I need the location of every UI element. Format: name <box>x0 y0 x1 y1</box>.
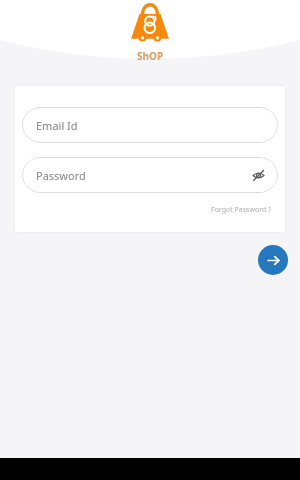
staticText: Password <box>36 168 86 183</box>
staticText: Forgot Password ? <box>211 205 272 215</box>
button[interactable]: Email Id <box>22 107 278 143</box>
staticText: Email Id <box>36 118 78 133</box>
button[interactable]: Submit <box>258 245 288 275</box>
button[interactable]: Forgot Password ? <box>205 203 278 217</box>
button[interactable]: Show password <box>248 165 268 185</box>
button[interactable]: Password <box>22 157 278 193</box>
staticText: ShOP <box>137 49 164 63</box>
